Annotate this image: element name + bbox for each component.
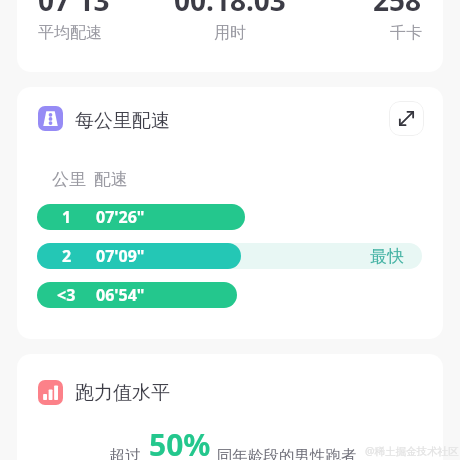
- staticText: 07'26": [96, 206, 145, 228]
- staticText: 配速: [94, 169, 128, 190]
- button[interactable]: Expand chart: [389, 101, 424, 136]
- button[interactable]: <3: [37, 282, 237, 308]
- staticText: 用时: [214, 23, 246, 43]
- staticText: 跑力值水平: [75, 381, 170, 405]
- staticText: 公里: [52, 169, 86, 190]
- staticText: 平均配速: [38, 23, 102, 43]
- staticText: 千卡: [390, 23, 422, 43]
- staticText: 同年龄段的男性跑者: [217, 446, 357, 460]
- staticText: <3: [57, 284, 76, 306]
- staticText: 最快: [370, 246, 404, 267]
- staticText: 07'13: [38, 0, 110, 19]
- staticText: 07'09": [96, 245, 145, 267]
- staticText: 2: [62, 245, 72, 267]
- staticText: 06'54": [96, 284, 145, 306]
- staticText: @稀土掘金技术社区: [365, 444, 459, 458]
- staticText: 1: [62, 206, 72, 228]
- staticText: 258: [373, 0, 422, 19]
- staticText: 每公里配速: [75, 109, 170, 133]
- button[interactable]: 1: [37, 204, 245, 230]
- staticText: 00:18:03: [174, 0, 286, 19]
- button[interactable]: 2: [37, 243, 241, 269]
- staticText: 50%: [149, 424, 211, 460]
- staticText: 超过: [109, 446, 141, 460]
